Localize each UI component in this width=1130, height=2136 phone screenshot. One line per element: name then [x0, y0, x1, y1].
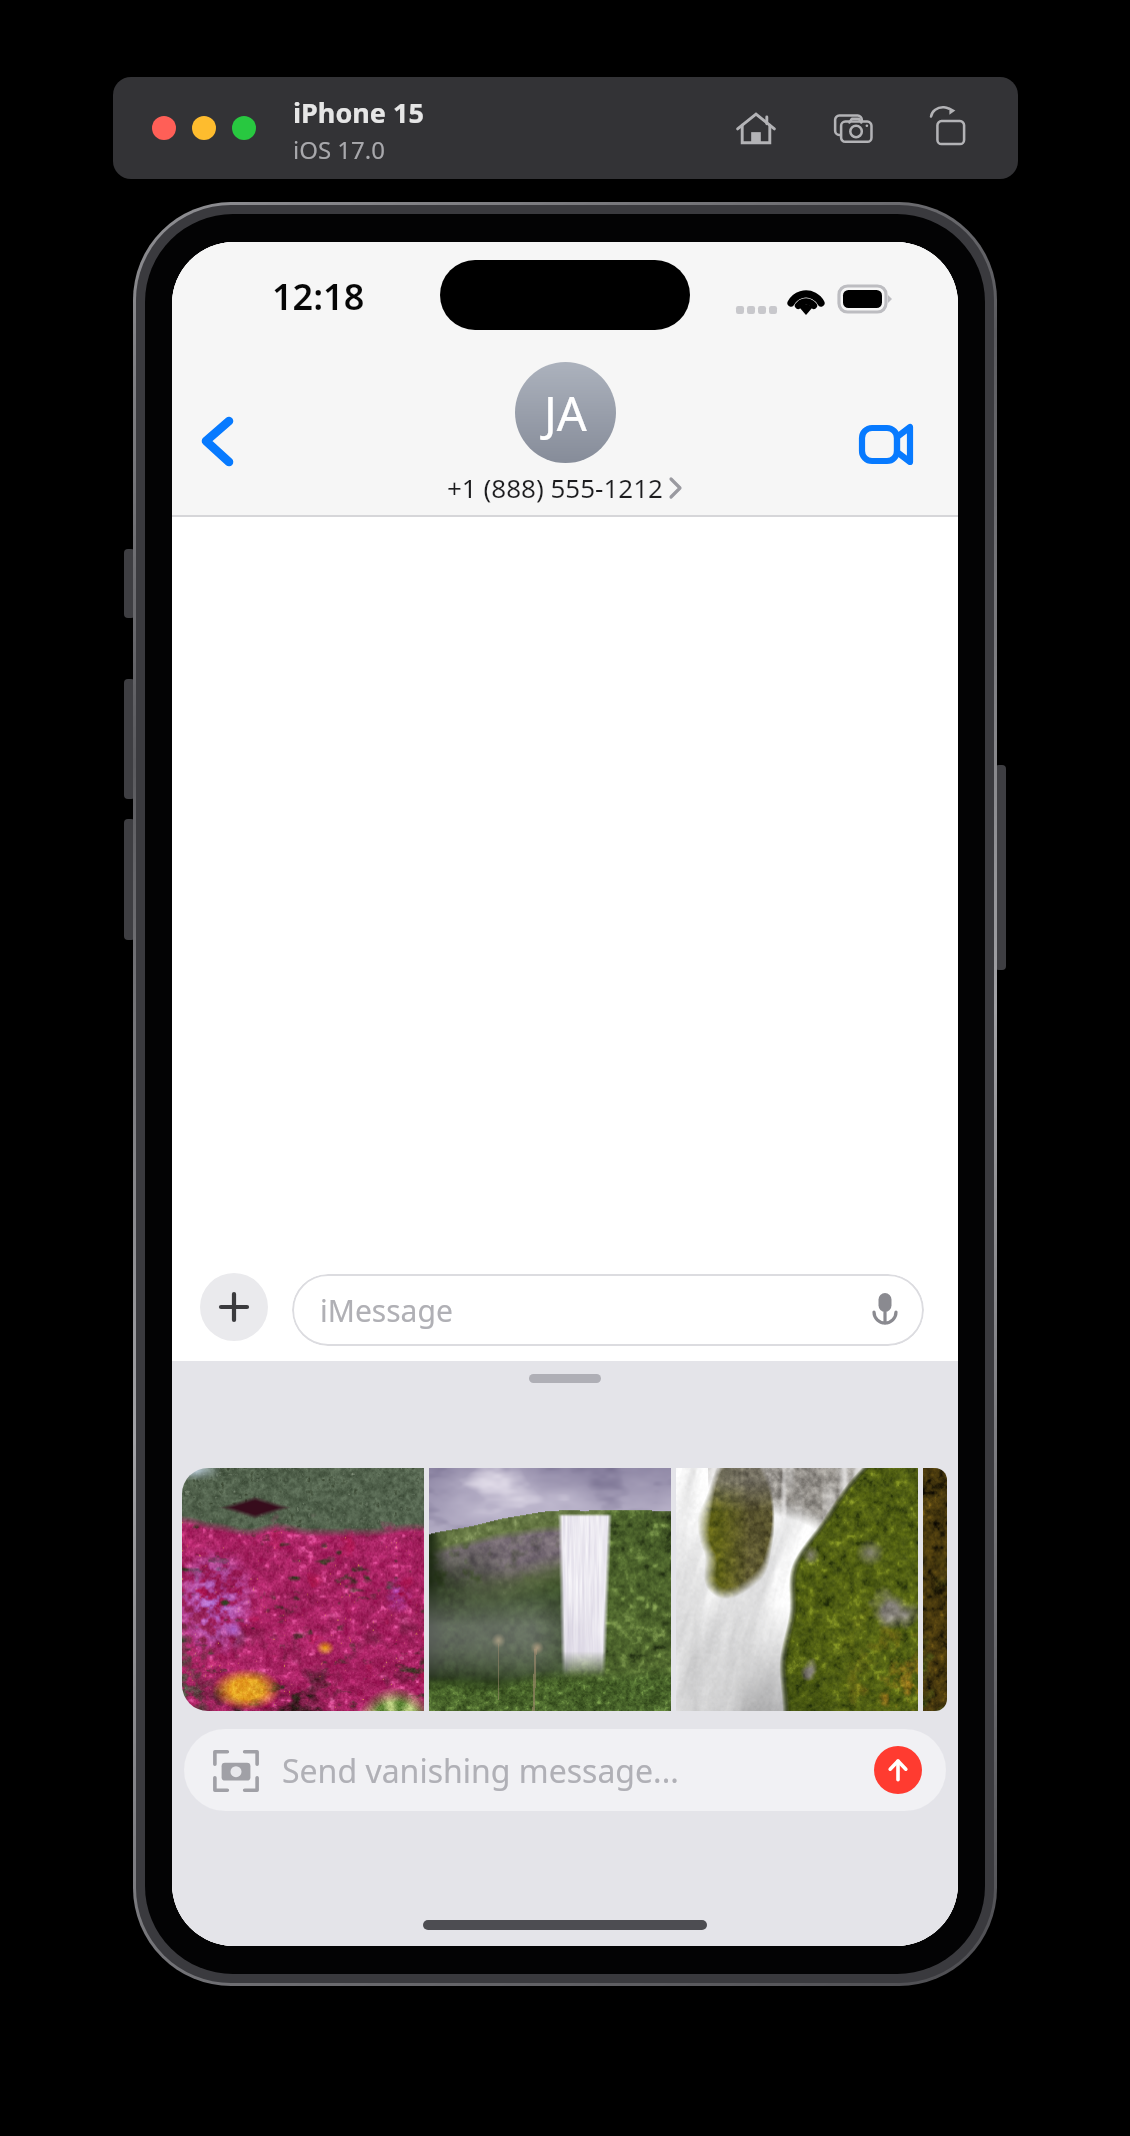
- button[interactable]: Photo 1: [182, 1468, 424, 1711]
- button[interactable]: Rotate: [925, 105, 971, 151]
- button[interactable]: Close: [152, 116, 176, 140]
- button[interactable]: Zoom: [232, 116, 256, 140]
- button[interactable]: Home: [733, 105, 779, 151]
- button[interactable]: Photo 3: [676, 1468, 918, 1711]
- button[interactable]: Send vanishing message...: [184, 1729, 946, 1811]
- button[interactable]: Photo 4: [923, 1468, 947, 1711]
- staticText: iMessage: [320, 1290, 453, 1331]
- button[interactable]: iMessage: [292, 1274, 924, 1346]
- staticText: iPhone 15: [293, 94, 424, 131]
- button[interactable]: Back: [176, 399, 252, 475]
- button[interactable]: Screenshot: [831, 105, 877, 151]
- button[interactable]: FaceTime video call: [837, 397, 937, 477]
- button[interactable]: Minimise: [192, 116, 216, 140]
- staticText: +1 (888) 555-1212: [447, 470, 663, 505]
- button[interactable]: +1 (888) 555-1212: [447, 470, 683, 505]
- staticText: iOS 17.0: [293, 133, 385, 166]
- staticText: Send vanishing message...: [282, 1749, 679, 1793]
- button[interactable]: Send: [874, 1746, 922, 1794]
- button[interactable]: JA: [515, 362, 616, 463]
- staticText: 12:18: [272, 272, 365, 321]
- staticText: JA: [544, 381, 587, 445]
- button[interactable]: Add attachment: [200, 1273, 268, 1341]
- button[interactable]: Photo 2: [429, 1468, 671, 1711]
